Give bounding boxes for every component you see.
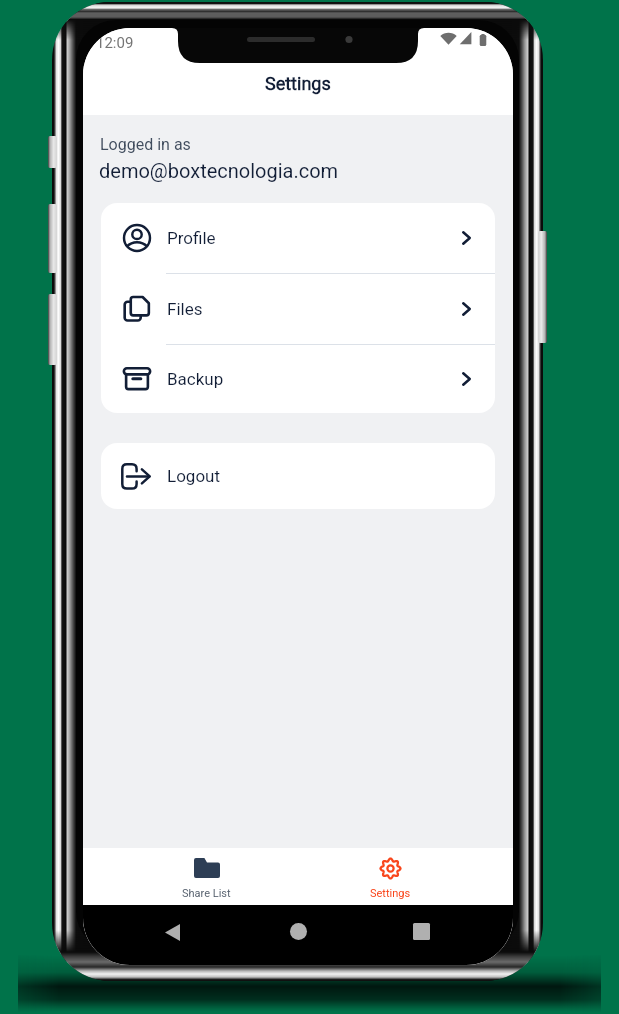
button[interactable]: Backup bbox=[101, 345, 495, 413]
button[interactable]: Share List bbox=[99, 848, 314, 905]
staticText: Logout bbox=[167, 466, 221, 486]
other: Home bbox=[290, 923, 307, 940]
staticText: Files bbox=[167, 299, 203, 319]
staticText: Share List bbox=[182, 887, 231, 900]
staticText: demo@boxtecnologia.com bbox=[99, 159, 339, 182]
staticText: Logged in as bbox=[100, 135, 191, 154]
staticText: Profile bbox=[167, 228, 216, 248]
staticText: Backup bbox=[167, 369, 224, 389]
staticText: Settings bbox=[265, 73, 331, 94]
button[interactable]: Settings bbox=[283, 848, 498, 905]
button[interactable]: Profile bbox=[101, 203, 495, 273]
staticText: Settings bbox=[370, 887, 411, 900]
staticText: 12:09 bbox=[96, 34, 134, 52]
button[interactable]: Files bbox=[101, 274, 495, 344]
other: Recents bbox=[413, 923, 430, 940]
button[interactable]: Logout bbox=[101, 443, 495, 509]
other: Back bbox=[165, 924, 180, 941]
